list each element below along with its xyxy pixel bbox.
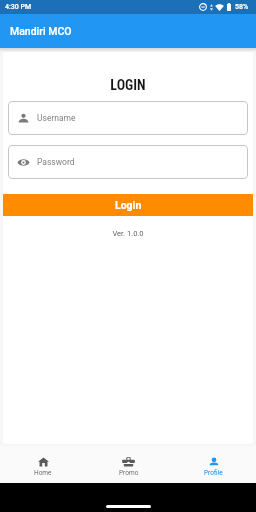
staticText: LOGIN bbox=[3, 77, 253, 93]
staticText: Username bbox=[37, 113, 76, 123]
button[interactable]: Username bbox=[8, 101, 248, 135]
button[interactable]: Promo bbox=[86, 446, 171, 483]
staticText: 58% bbox=[235, 3, 249, 11]
button[interactable]: Login bbox=[3, 194, 253, 216]
staticText: Promo bbox=[119, 469, 139, 477]
staticText: Login bbox=[115, 199, 142, 211]
staticText: Profile bbox=[204, 469, 223, 477]
button[interactable]: Home bbox=[0, 446, 86, 483]
staticText: 4:30 PM bbox=[5, 3, 32, 11]
staticText: Password bbox=[37, 157, 75, 167]
staticText: Home bbox=[34, 469, 52, 477]
button[interactable]: Password bbox=[8, 145, 248, 179]
button[interactable]: Profile bbox=[171, 446, 256, 483]
staticText: Ver. 1.0.0 bbox=[3, 229, 253, 238]
staticText: Mandiri MCO bbox=[10, 25, 72, 37]
